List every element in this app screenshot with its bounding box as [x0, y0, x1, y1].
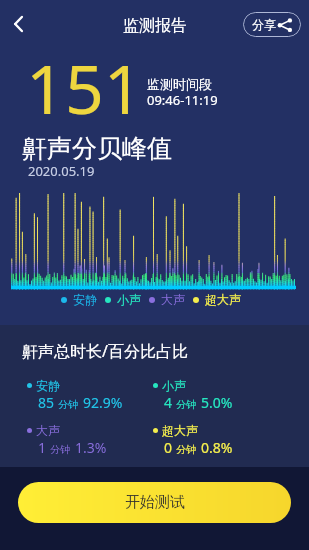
staticText: 151 [26, 41, 143, 134]
staticText: 分钟 [58, 398, 78, 411]
staticText: 监测报告 [123, 16, 187, 36]
button[interactable]: Back [2, 7, 36, 41]
staticText: 大声 [36, 423, 60, 438]
staticText: 分钟 [176, 398, 196, 411]
staticText: 小声 [117, 292, 141, 307]
staticText: 1.3% [75, 438, 107, 457]
staticText: 安静 [36, 378, 60, 393]
staticText: 2020.05.19 [28, 162, 95, 180]
staticText: 85 [38, 393, 55, 412]
staticText: 5.0% [201, 393, 233, 412]
button[interactable]: 开始测试 [18, 482, 291, 523]
staticText: 1 [38, 438, 47, 457]
staticText: 分钟 [50, 443, 70, 456]
staticText: 超大声 [205, 292, 241, 307]
staticText: 监测时间段 [147, 76, 212, 92]
staticText: 超大声 [162, 423, 198, 438]
staticText: 鼾声总时长/百分比占比 [22, 340, 188, 362]
staticText: 4 [164, 393, 173, 412]
staticText: 大声 [161, 292, 185, 307]
staticText: 0.8% [201, 438, 233, 457]
staticText: 鼾声分贝峰值 [22, 133, 172, 164]
staticText: 09:46-11:19 [147, 91, 218, 109]
staticText: 安静 [73, 292, 97, 307]
button[interactable]: 分享 [243, 12, 301, 37]
staticText: 开始测试 [125, 493, 185, 512]
staticText: 小声 [162, 378, 186, 393]
staticText: 分享 [252, 17, 276, 32]
staticText: 分钟 [176, 443, 196, 456]
staticText: 92.9% [83, 393, 123, 412]
staticText: 0 [164, 438, 173, 457]
